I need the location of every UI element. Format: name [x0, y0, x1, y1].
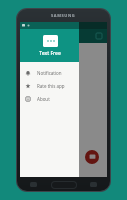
button[interactable]: Home: [51, 181, 77, 189]
button[interactable]: Notification: [20, 66, 79, 79]
button[interactable]: Close navigation drawer: [79, 22, 107, 177]
staticText: SAMSUNG: [51, 13, 76, 18]
button[interactable]: About: [20, 92, 79, 105]
staticText: Notification: [37, 70, 62, 76]
staticText: About: [37, 96, 50, 102]
button[interactable]: Menu: [94, 31, 104, 41]
button[interactable]: Compose message: [85, 150, 99, 164]
button[interactable]: Back: [90, 182, 97, 187]
button[interactable]: Rate this app: [20, 79, 79, 92]
button[interactable]: Recents: [30, 182, 37, 187]
staticText: Text Free: [39, 50, 61, 57]
staticText: Rate this app: [37, 83, 65, 89]
